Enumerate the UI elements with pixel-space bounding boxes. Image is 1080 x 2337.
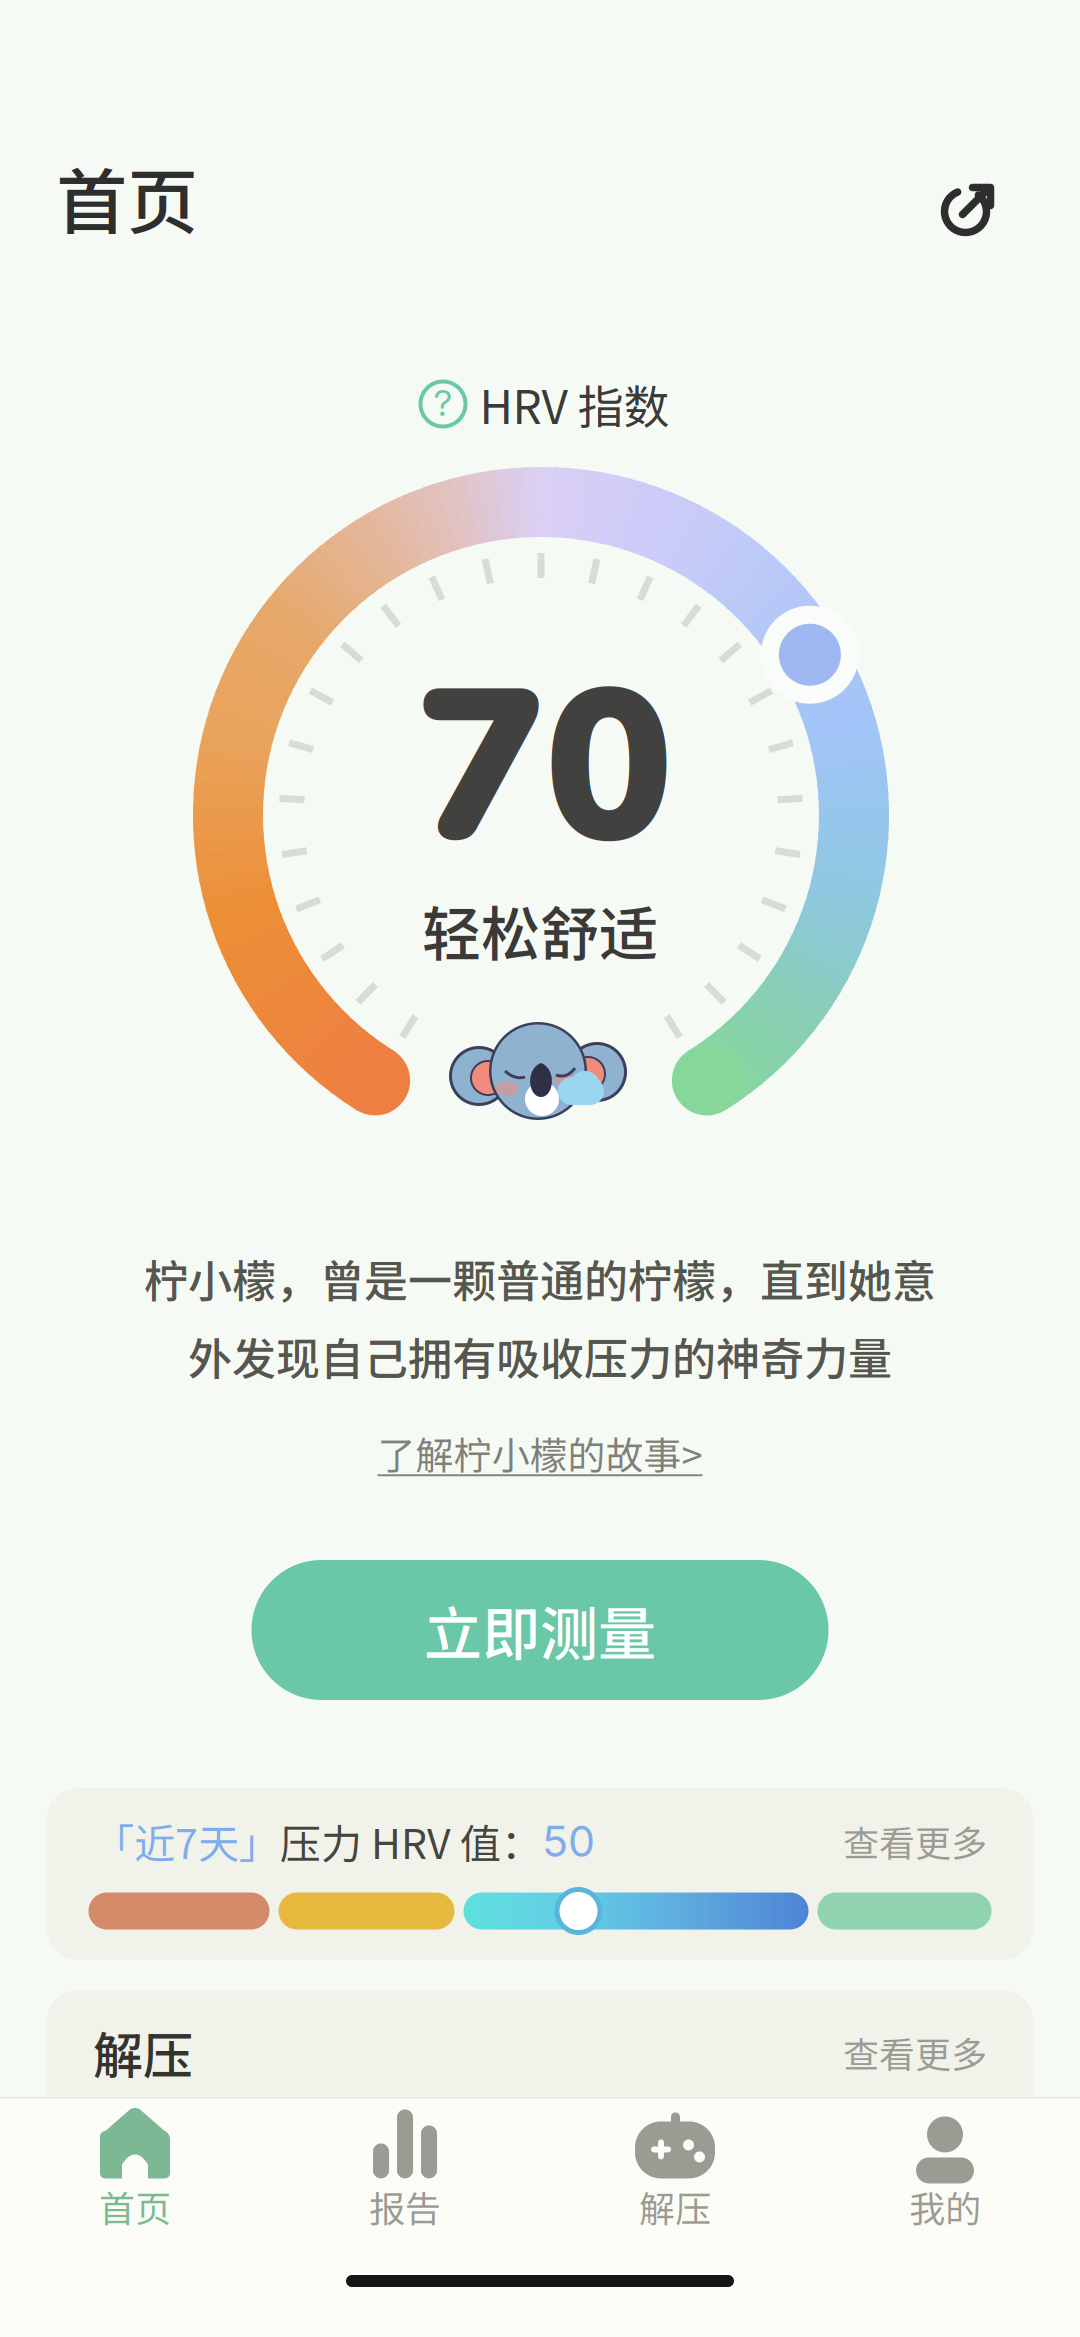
staticText: 「近7天」 (93, 1811, 280, 1871)
button[interactable]: 首页 (0, 2104, 270, 2234)
staticText: 了解柠小檬的故事> (377, 1425, 702, 1480)
staticText: 外发现自己拥有吸收压力的神奇力量 (188, 1324, 892, 1388)
staticText: HRV 指数 (479, 371, 669, 437)
staticText: 轻松舒适 (422, 887, 658, 973)
staticText: 压力 HRV 值： (280, 1811, 542, 1871)
staticText: 查看更多 (843, 1815, 987, 1867)
button[interactable]: 立即测量 (251, 1560, 828, 1700)
staticText: ? (433, 381, 452, 425)
button[interactable]: 解压 (540, 2104, 810, 2234)
staticText: 查看更多 (843, 2026, 987, 2078)
staticText: 我的 (909, 2180, 981, 2232)
staticText: 解压 (639, 2180, 711, 2232)
button[interactable]: 解压 (47, 1990, 1033, 2220)
button[interactable]: 我的 (810, 2104, 1080, 2234)
staticText: 解压 (93, 2016, 193, 2088)
button[interactable]: 了解柠小檬的故事> (367, 1419, 712, 1486)
button[interactable]: 「近7天」 (47, 1788, 1033, 1960)
staticText: 50 (542, 1815, 595, 1867)
button[interactable]: 报告 (270, 2104, 540, 2234)
button[interactable]: Share (937, 183, 994, 240)
staticText: 70 (417, 622, 673, 913)
staticText: 首页 (56, 146, 198, 248)
staticText: 报告 (369, 2180, 441, 2232)
staticText: 首页 (99, 2180, 171, 2232)
staticText: 柠小檬，曾是一颗普通的柠檬，直到她意 (144, 1246, 936, 1310)
staticText: 立即测量 (424, 1588, 656, 1672)
